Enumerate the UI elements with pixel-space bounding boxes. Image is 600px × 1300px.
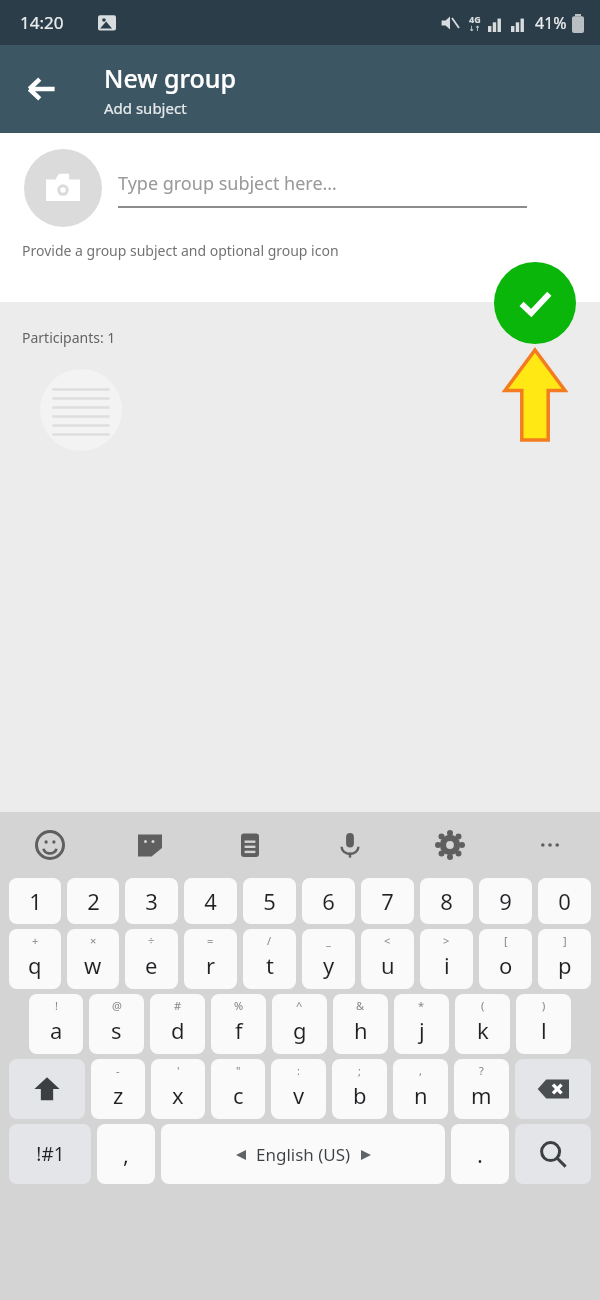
staticText: 4G (469, 13, 481, 25)
button[interactable]: Emoji (0, 812, 100, 878)
button[interactable]: Clipboard (200, 812, 300, 878)
button[interactable]: ^ (272, 994, 327, 1054)
button[interactable]: 9 (479, 878, 532, 924)
button[interactable]: + (9, 929, 61, 989)
button[interactable]: 4 (184, 878, 237, 924)
staticText: 4 (204, 886, 217, 916)
staticText: s (111, 1015, 122, 1045)
button[interactable]: < (361, 929, 414, 989)
staticText: t (266, 950, 274, 980)
button[interactable]: ÷ (125, 929, 178, 989)
staticText: j (419, 1015, 425, 1045)
staticText: k (477, 1015, 489, 1045)
staticText: q (28, 950, 42, 980)
staticText: o (499, 950, 513, 980)
button[interactable]: 5 (243, 878, 296, 924)
button[interactable]: ? (454, 1059, 509, 1119)
button[interactable]: Create group (494, 262, 576, 344)
staticText: m (471, 1080, 492, 1110)
staticText: , (419, 1063, 422, 1078)
button[interactable]: Stickers (100, 812, 200, 878)
button[interactable]: & (333, 994, 388, 1054)
staticText: e (145, 950, 158, 980)
staticText: n (414, 1080, 428, 1110)
button[interactable]: × (67, 929, 119, 989)
staticText: ? (479, 1063, 484, 1078)
button[interactable]: Add group icon (24, 149, 102, 227)
button[interactable]: = (184, 929, 237, 989)
button[interactable]: 1 (9, 878, 61, 924)
button[interactable]: Search (515, 1124, 591, 1184)
button[interactable]: 0 (538, 878, 591, 924)
staticText: a (50, 1015, 63, 1045)
button[interactable]: 6 (302, 878, 355, 924)
button[interactable]: , (97, 1124, 155, 1184)
staticText: g (293, 1015, 307, 1045)
button[interactable]: ) (516, 994, 571, 1054)
button[interactable]: > (420, 929, 473, 989)
staticText: = (207, 933, 214, 948)
button[interactable]: Voice input (300, 812, 400, 878)
staticText: Type group subject here… (118, 171, 337, 196)
button[interactable]: : (271, 1059, 326, 1119)
button[interactable]: Back (14, 61, 70, 117)
button[interactable]: Emoji (544, 298, 588, 342)
button[interactable]: - (91, 1059, 145, 1119)
staticText: ) (542, 998, 546, 1013)
button[interactable]: ! (29, 994, 83, 1054)
button[interactable]: . (451, 1124, 509, 1184)
button[interactable]: 3 (125, 878, 178, 924)
staticText: 8 (440, 886, 453, 916)
staticText: # (174, 998, 182, 1013)
staticText: u (381, 950, 395, 980)
staticText: > (443, 933, 450, 948)
staticText: ^ (296, 998, 303, 1013)
button[interactable]: % (211, 994, 266, 1054)
staticText: / (267, 933, 272, 948)
staticText: y (323, 950, 335, 980)
button[interactable]: @ (89, 994, 144, 1054)
staticText: : (297, 1063, 300, 1078)
button[interactable]: English (US) (161, 1124, 445, 1184)
staticText: 14:20 (20, 11, 64, 34)
button[interactable]: * (394, 994, 449, 1054)
button[interactable]: ' (151, 1059, 205, 1119)
button[interactable]: !#1 (9, 1124, 91, 1184)
button[interactable]: More (500, 812, 600, 878)
button[interactable]: Settings (400, 812, 500, 878)
button[interactable]: / (243, 929, 296, 989)
staticText: New group (104, 61, 236, 95)
staticText: 7 (381, 886, 394, 916)
staticText: < (384, 933, 391, 948)
staticText: , (123, 1139, 129, 1169)
button[interactable]: Shift (9, 1059, 85, 1119)
staticText: 41% (535, 12, 567, 34)
staticText: p (558, 950, 572, 980)
button[interactable]: Type group subject here… (118, 171, 527, 196)
button[interactable]: Backspace (515, 1059, 591, 1119)
staticText: [ (504, 933, 508, 948)
button[interactable]: [ (479, 929, 532, 989)
staticText: + (32, 933, 39, 948)
staticText: " (236, 1063, 241, 1078)
button[interactable]: ( (455, 994, 510, 1054)
button[interactable]: " (211, 1059, 265, 1119)
button[interactable]: 2 (67, 878, 119, 924)
staticText: ; (358, 1063, 361, 1078)
staticText: x (172, 1080, 184, 1110)
button[interactable]: 7 (361, 878, 414, 924)
staticText: 5 (263, 886, 276, 916)
staticText: ÷ (148, 933, 155, 948)
staticText: English (US) (256, 1143, 351, 1166)
button[interactable]: 8 (420, 878, 473, 924)
button[interactable]: _ (302, 929, 355, 989)
staticText: - (116, 1063, 120, 1078)
button[interactable]: ] (538, 929, 591, 989)
button[interactable]: , (393, 1059, 448, 1119)
staticText: f (235, 1015, 243, 1045)
staticText: Provide a group subject and optional gro… (22, 241, 339, 260)
button[interactable]: # (150, 994, 205, 1054)
staticText: b (353, 1080, 367, 1110)
staticText: ↓↑ (469, 25, 481, 33)
button[interactable]: ; (332, 1059, 387, 1119)
